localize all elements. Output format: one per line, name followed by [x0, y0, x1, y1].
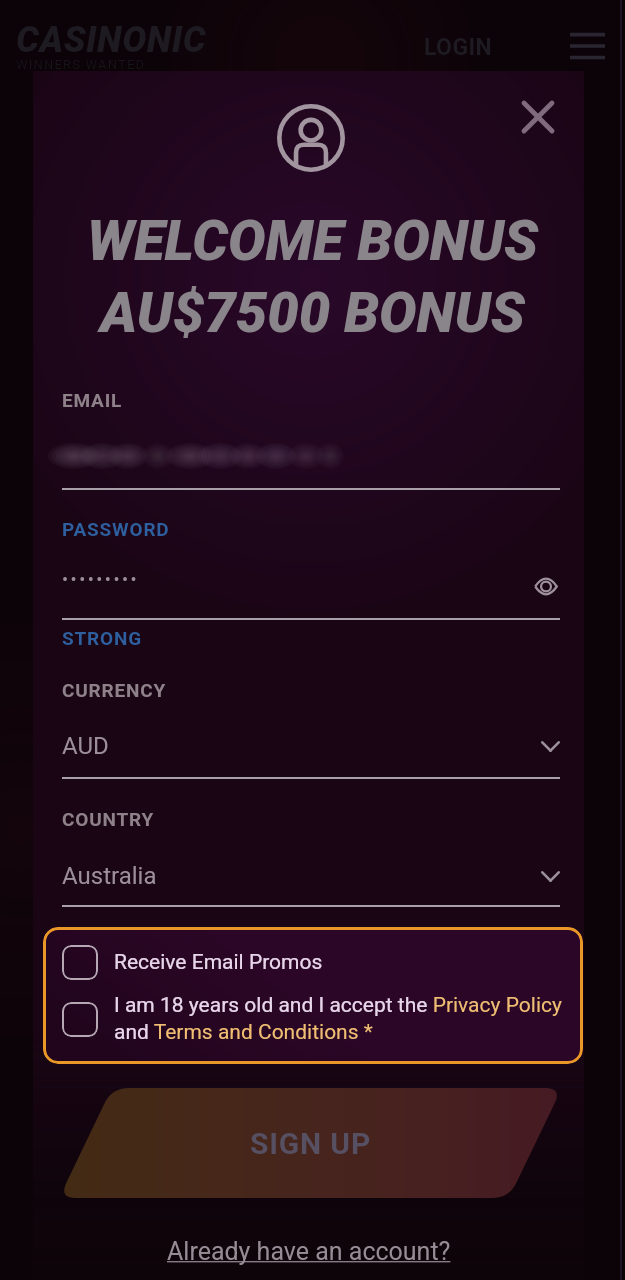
button[interactable]: Close — [506, 85, 570, 149]
staticText: WELCOME BONUS — [37, 208, 588, 274]
button[interactable]: SIGN UP — [59, 1088, 562, 1198]
staticText: PASSWORD — [62, 518, 170, 540]
staticText: Australia — [62, 862, 157, 890]
staticText: ••••••••• — [62, 569, 140, 590]
staticText: CASINONIC — [16, 19, 207, 61]
staticText: EMAIL — [62, 389, 123, 411]
staticText: AU$7500 BONUS — [37, 280, 588, 346]
staticText: AUD — [62, 732, 109, 760]
button[interactable]: Show password — [528, 568, 564, 604]
button[interactable]: Australia — [62, 855, 560, 897]
button[interactable]: I am 18 years old and I accept the Priva… — [62, 988, 578, 1050]
staticText: LOGIN — [424, 34, 493, 61]
staticText: I am 18 years old and I accept the Priva… — [114, 993, 566, 1045]
staticText: COUNTRY — [62, 808, 155, 830]
button[interactable]: Receive Email Promos — [62, 942, 562, 982]
staticText: STRONG — [62, 627, 142, 649]
staticText: CURRENCY — [62, 679, 166, 701]
staticText: WINNERS WANTED — [16, 57, 146, 72]
button[interactable]: Already have an account? — [167, 1237, 451, 1266]
button[interactable]: LOGIN — [418, 30, 499, 65]
staticText: Already have an account? — [167, 1237, 451, 1266]
staticText: SIGN UP — [250, 1126, 372, 1161]
staticText: Receive Email Promos — [114, 950, 323, 975]
button[interactable]: Menu — [562, 20, 612, 70]
button[interactable]: AUD — [62, 725, 560, 767]
